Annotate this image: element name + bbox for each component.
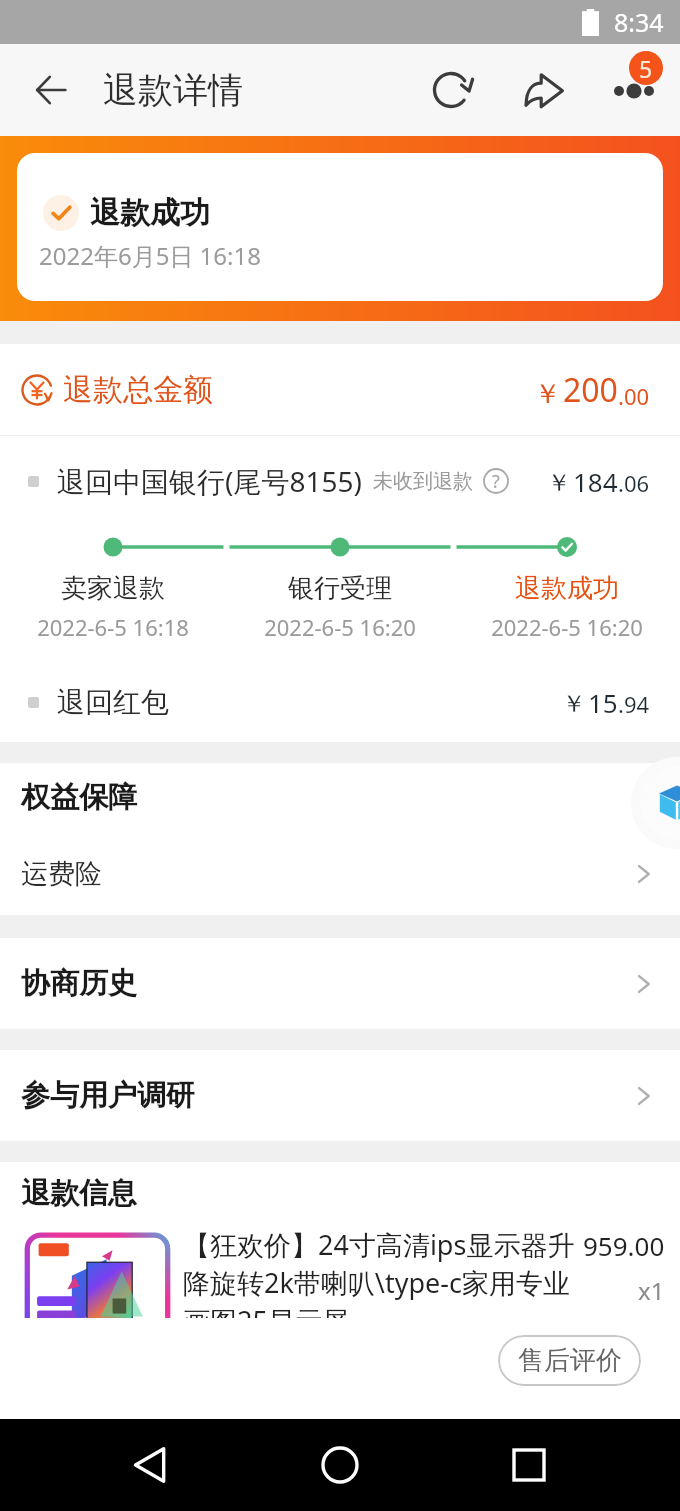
staticText: 5 bbox=[639, 53, 653, 84]
staticText: ? bbox=[492, 469, 500, 494]
staticText: 184 bbox=[573, 464, 618, 499]
staticText: 售后评价 bbox=[518, 1344, 622, 1377]
staticText: 卖家退款 bbox=[61, 572, 165, 605]
button[interactable]: Refresh bbox=[416, 53, 490, 127]
staticText: 2022-6-5 16:20 bbox=[264, 612, 416, 642]
staticText: 未收到退款 bbox=[373, 469, 473, 494]
staticText: 退款成功 bbox=[515, 572, 619, 605]
button[interactable]: More options bbox=[597, 53, 671, 127]
staticText: ￥ bbox=[534, 377, 561, 411]
staticText: 退款成功 bbox=[90, 194, 210, 232]
staticText: 959.00 bbox=[583, 1228, 665, 1263]
button[interactable]: Help bbox=[482, 467, 510, 495]
staticText: 权益保障 bbox=[21, 779, 137, 816]
button[interactable]: Back bbox=[120, 1435, 180, 1495]
button[interactable]: Back bbox=[14, 53, 88, 127]
staticText: 2022-6-5 16:20 bbox=[491, 612, 643, 642]
button[interactable]: 【狂欢价】24寸高清ips显示器升降旋转2k带喇叭\type-c家用专业画图25… bbox=[22, 1226, 680, 1318]
staticText: 参与用户调研 bbox=[21, 1077, 195, 1114]
staticText: 退款总金额 bbox=[63, 371, 213, 409]
staticText: 200 bbox=[563, 368, 618, 412]
staticText: ￥ bbox=[547, 468, 571, 498]
button[interactable]: 协商历史 bbox=[0, 938, 680, 1029]
button[interactable]: Home bbox=[310, 1435, 370, 1495]
button[interactable]: 参与用户调研 bbox=[0, 1050, 680, 1141]
staticText: ￥ bbox=[562, 689, 586, 719]
button[interactable]: 售后评价 bbox=[498, 1335, 641, 1386]
staticText: .06 bbox=[618, 468, 650, 498]
staticText: .94 bbox=[618, 689, 650, 719]
staticText: 退回中国银行(尾号8155) bbox=[57, 462, 362, 500]
staticText: 【狂欢价】24寸高清ips显示器升降旋转2k带喇叭\type-c家用专业画图25… bbox=[183, 1226, 575, 1318]
staticText: 运费险 bbox=[21, 857, 102, 891]
staticText: x1 bbox=[638, 1274, 665, 1307]
staticText: 2022-6-5 16:18 bbox=[37, 612, 189, 642]
button[interactable]: Share bbox=[507, 53, 581, 127]
button[interactable]: Recents bbox=[499, 1435, 559, 1495]
staticText: 8:34 bbox=[614, 5, 664, 39]
staticText: 退款信息 bbox=[21, 1175, 137, 1212]
staticText: .00 bbox=[618, 381, 650, 411]
staticText: 15 bbox=[588, 685, 618, 720]
staticText: 银行受理 bbox=[288, 572, 392, 605]
button[interactable]: 退款总金额 bbox=[0, 344, 680, 435]
staticText: 退回红包 bbox=[57, 685, 169, 720]
button[interactable]: 运费险 bbox=[0, 832, 680, 915]
staticText: 协商历史 bbox=[21, 965, 137, 1002]
staticText: 退款详情 bbox=[103, 68, 243, 112]
staticText: 2022年6月5日 16:18 bbox=[39, 239, 261, 272]
